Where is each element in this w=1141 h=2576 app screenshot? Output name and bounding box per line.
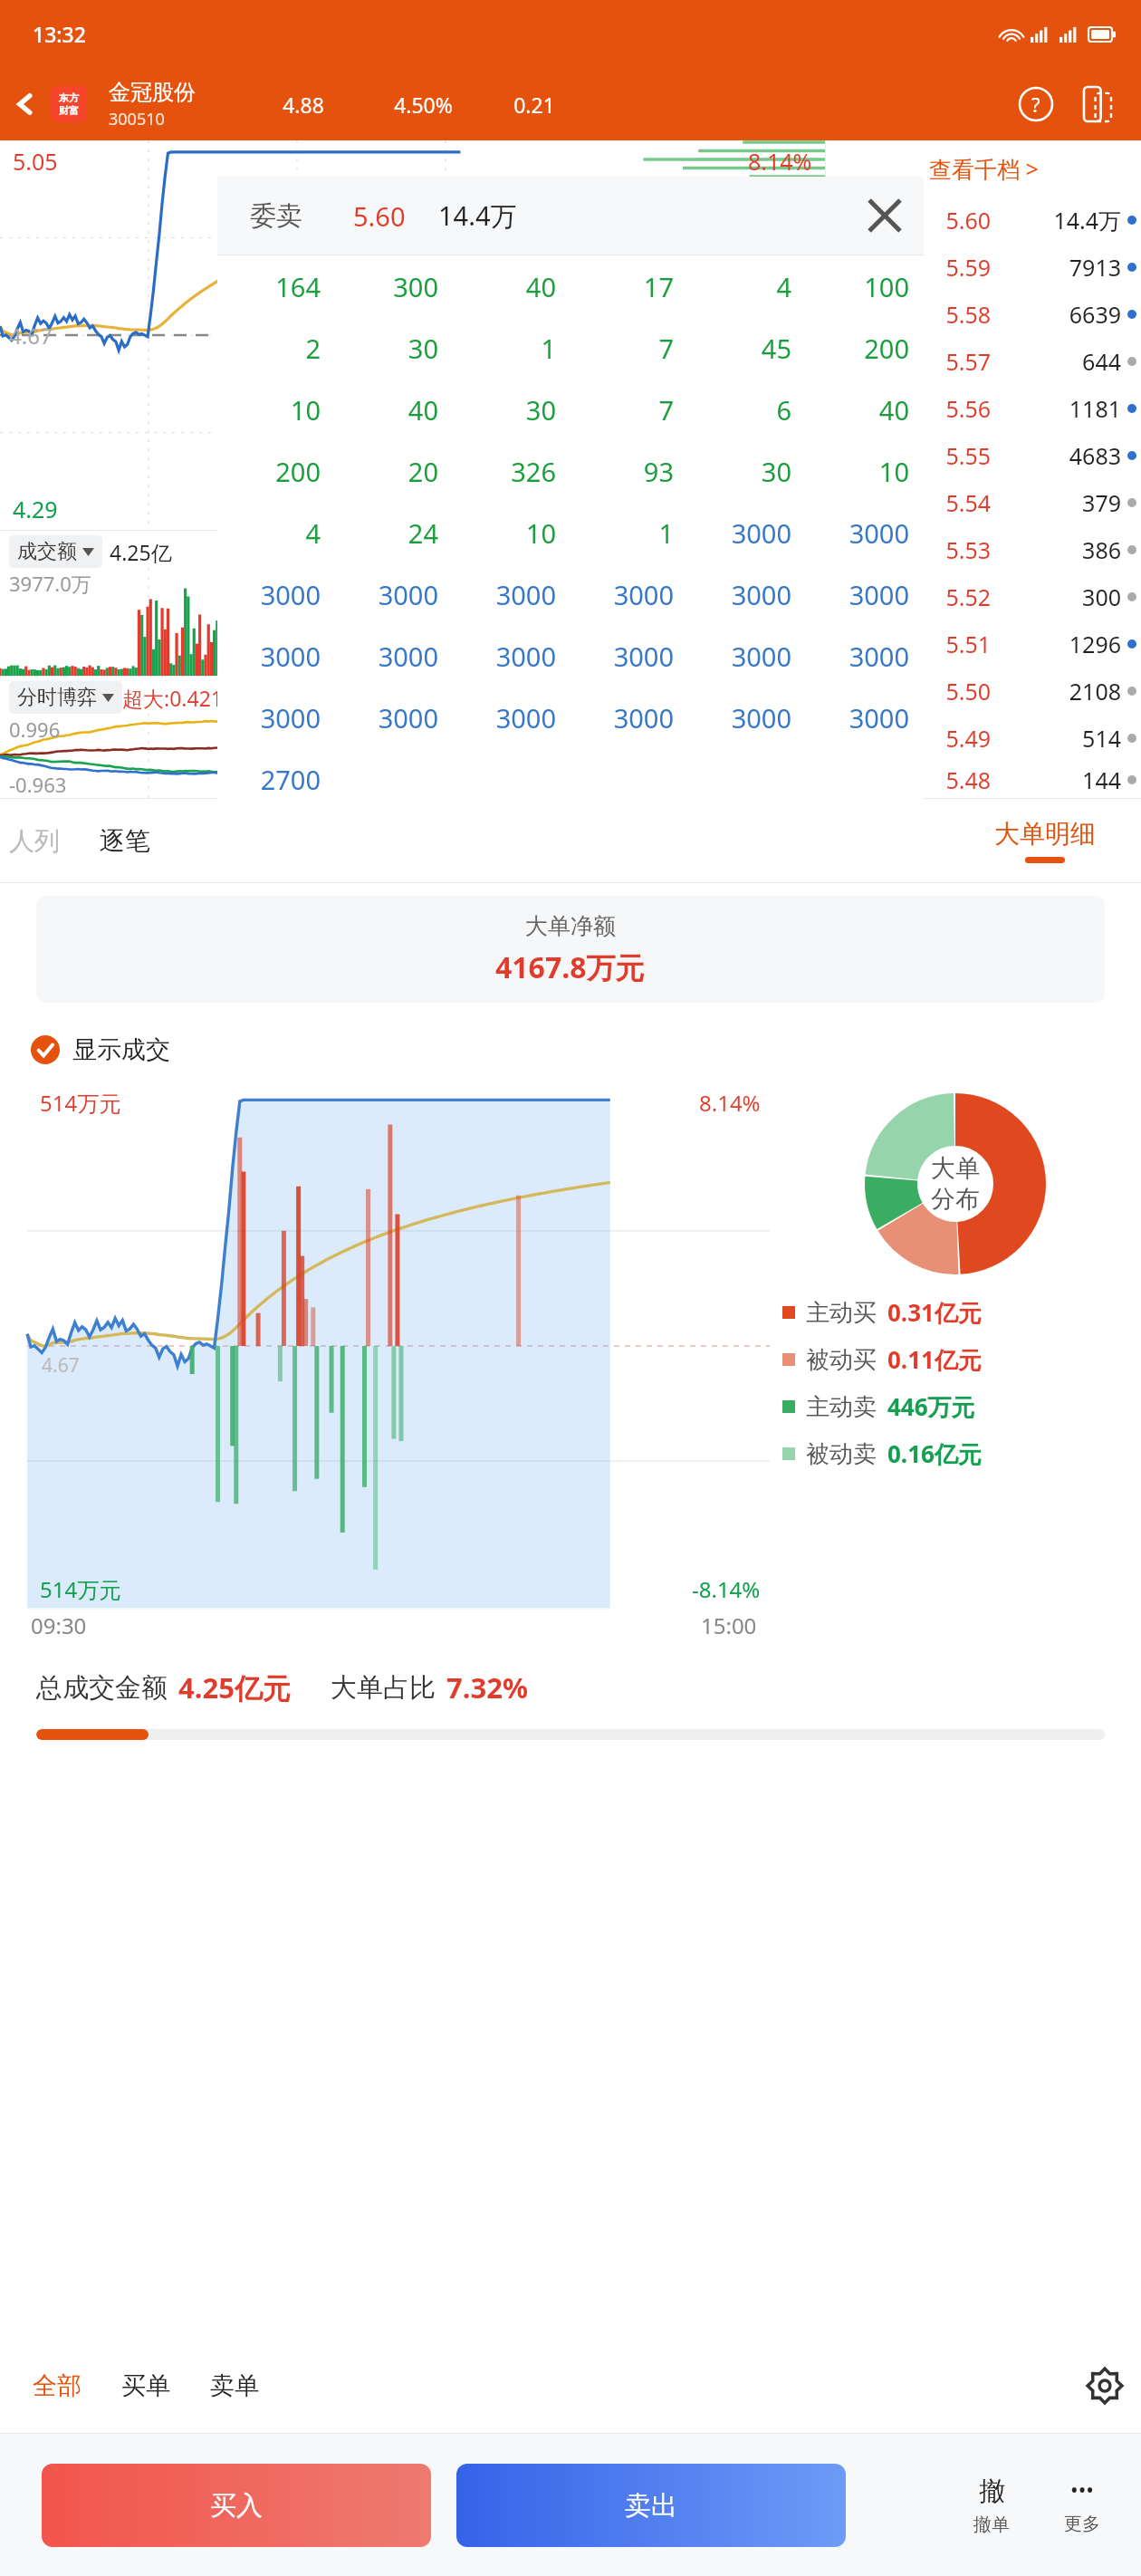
staticText: 5.58: [907, 299, 991, 330]
staticText: 卖单: [210, 2370, 259, 2401]
button[interactable]: 人列: [9, 825, 60, 857]
staticText: 8.14%: [748, 146, 812, 177]
button[interactable]: 撤: [942, 2475, 1041, 2536]
staticText: 326: [453, 454, 556, 489]
staticText: 更多: [1064, 2513, 1100, 2535]
button[interactable]: 逐笔: [100, 825, 150, 857]
button[interactable]: 卖66: [826, 526, 1141, 573]
button[interactable]: Back: [0, 68, 51, 140]
staticText: 446万元: [887, 1390, 975, 1423]
button[interactable]: 卖单: [210, 2370, 259, 2401]
staticText: 10: [806, 454, 909, 489]
staticText: 5.49: [907, 723, 991, 754]
staticText: 卖64: [837, 629, 907, 659]
staticText: 5.56: [907, 393, 991, 424]
staticText: 1: [570, 515, 674, 551]
button[interactable]: Snapshot: [1076, 82, 1119, 126]
staticText: 5.50: [907, 676, 991, 706]
staticText: 卖68: [837, 440, 907, 471]
button[interactable]: 卖64: [826, 620, 1141, 668]
button[interactable]: 查看千档 >: [826, 140, 1141, 197]
staticText: 3000: [217, 577, 321, 612]
staticText: 45: [688, 331, 791, 366]
staticText: 14.4万: [991, 205, 1121, 235]
button[interactable]: 卖68: [826, 432, 1141, 479]
staticText: 撤: [979, 2475, 1005, 2508]
button[interactable]: 全部: [33, 2370, 81, 2401]
button[interactable]: 卖62: [826, 715, 1141, 762]
staticText: 300: [335, 269, 438, 304]
staticText: 5.60: [907, 205, 991, 235]
staticText: 大单明细: [994, 818, 1096, 850]
button[interactable]: 买单: [121, 2370, 170, 2401]
staticText: 3000: [806, 639, 909, 674]
staticText: 4.88: [244, 91, 362, 119]
staticText: 09:30: [31, 1610, 87, 1640]
staticText: 2700: [217, 762, 321, 797]
staticText: 卖73: [837, 205, 907, 235]
button[interactable]: 成交额: [17, 539, 94, 564]
staticText: 撤单: [973, 2514, 1010, 2536]
staticText: 4683: [991, 440, 1121, 471]
button[interactable]: 卖73: [826, 197, 1141, 244]
staticText: 17: [570, 269, 674, 304]
button[interactable]: 卖70: [826, 338, 1141, 385]
staticText: 0.16亿元: [887, 1437, 982, 1470]
staticText: 0.11亿元: [887, 1343, 982, 1376]
staticText: 13:32: [33, 20, 86, 48]
staticText: 40: [453, 269, 556, 304]
staticText: 5.52: [907, 582, 991, 612]
staticText: 卖69: [837, 393, 907, 424]
staticText: 4.67: [42, 1352, 80, 1379]
staticText: 总成交金额: [36, 1671, 168, 1705]
staticText: 6: [688, 392, 791, 428]
staticText: 被动买: [806, 1345, 877, 1375]
staticText: 卖65: [837, 582, 907, 612]
staticText: 8.14%: [699, 1088, 761, 1118]
button[interactable]: 卖72: [826, 244, 1141, 291]
staticText: 30: [688, 454, 791, 489]
button[interactable]: 买入: [42, 2464, 431, 2547]
button[interactable]: 卖69: [826, 385, 1141, 432]
staticText: 7: [570, 392, 674, 428]
button[interactable]: •••: [1041, 2475, 1123, 2535]
button[interactable]: Close: [846, 177, 924, 255]
button[interactable]: 显示成交: [31, 1015, 1141, 1084]
staticText: 300: [991, 582, 1121, 612]
staticText: 卖66: [837, 534, 907, 565]
button[interactable]: 卖67: [826, 479, 1141, 526]
button[interactable]: 卖出: [456, 2464, 846, 2547]
button[interactable]: Help: [1014, 82, 1058, 126]
button[interactable]: 卖65: [826, 573, 1141, 620]
staticText: 3000: [688, 700, 791, 735]
staticText: 显示成交: [72, 1034, 170, 1065]
staticText: 1: [453, 331, 556, 366]
staticText: 3000: [688, 577, 791, 612]
staticText: 10: [217, 392, 321, 428]
staticText: 3000: [688, 639, 791, 674]
button[interactable]: 卖61: [826, 762, 1141, 798]
button[interactable]: 卖63: [826, 668, 1141, 715]
button[interactable]: 大单明细: [994, 818, 1096, 863]
staticText: 买单: [121, 2370, 170, 2401]
staticText: 4.25亿: [110, 538, 172, 566]
staticText: 4: [688, 269, 791, 304]
staticText: 大户:0.996: [223, 684, 323, 712]
staticText: 40: [335, 392, 438, 428]
staticText: 3000: [335, 577, 438, 612]
button[interactable]: 卖71: [826, 291, 1141, 338]
button[interactable]: Settings: [1069, 2350, 1141, 2422]
staticText: 分布: [931, 1184, 980, 1215]
staticText: 3000: [806, 577, 909, 612]
staticText: 7913: [991, 252, 1121, 283]
staticText: 3000: [453, 700, 556, 735]
staticText: 3000: [570, 700, 674, 735]
staticText: 0.996: [9, 716, 61, 743]
button[interactable]: 分时博弈: [17, 685, 114, 710]
staticText: 超大:0.421: [122, 684, 223, 712]
staticText: 5.60: [353, 198, 406, 234]
